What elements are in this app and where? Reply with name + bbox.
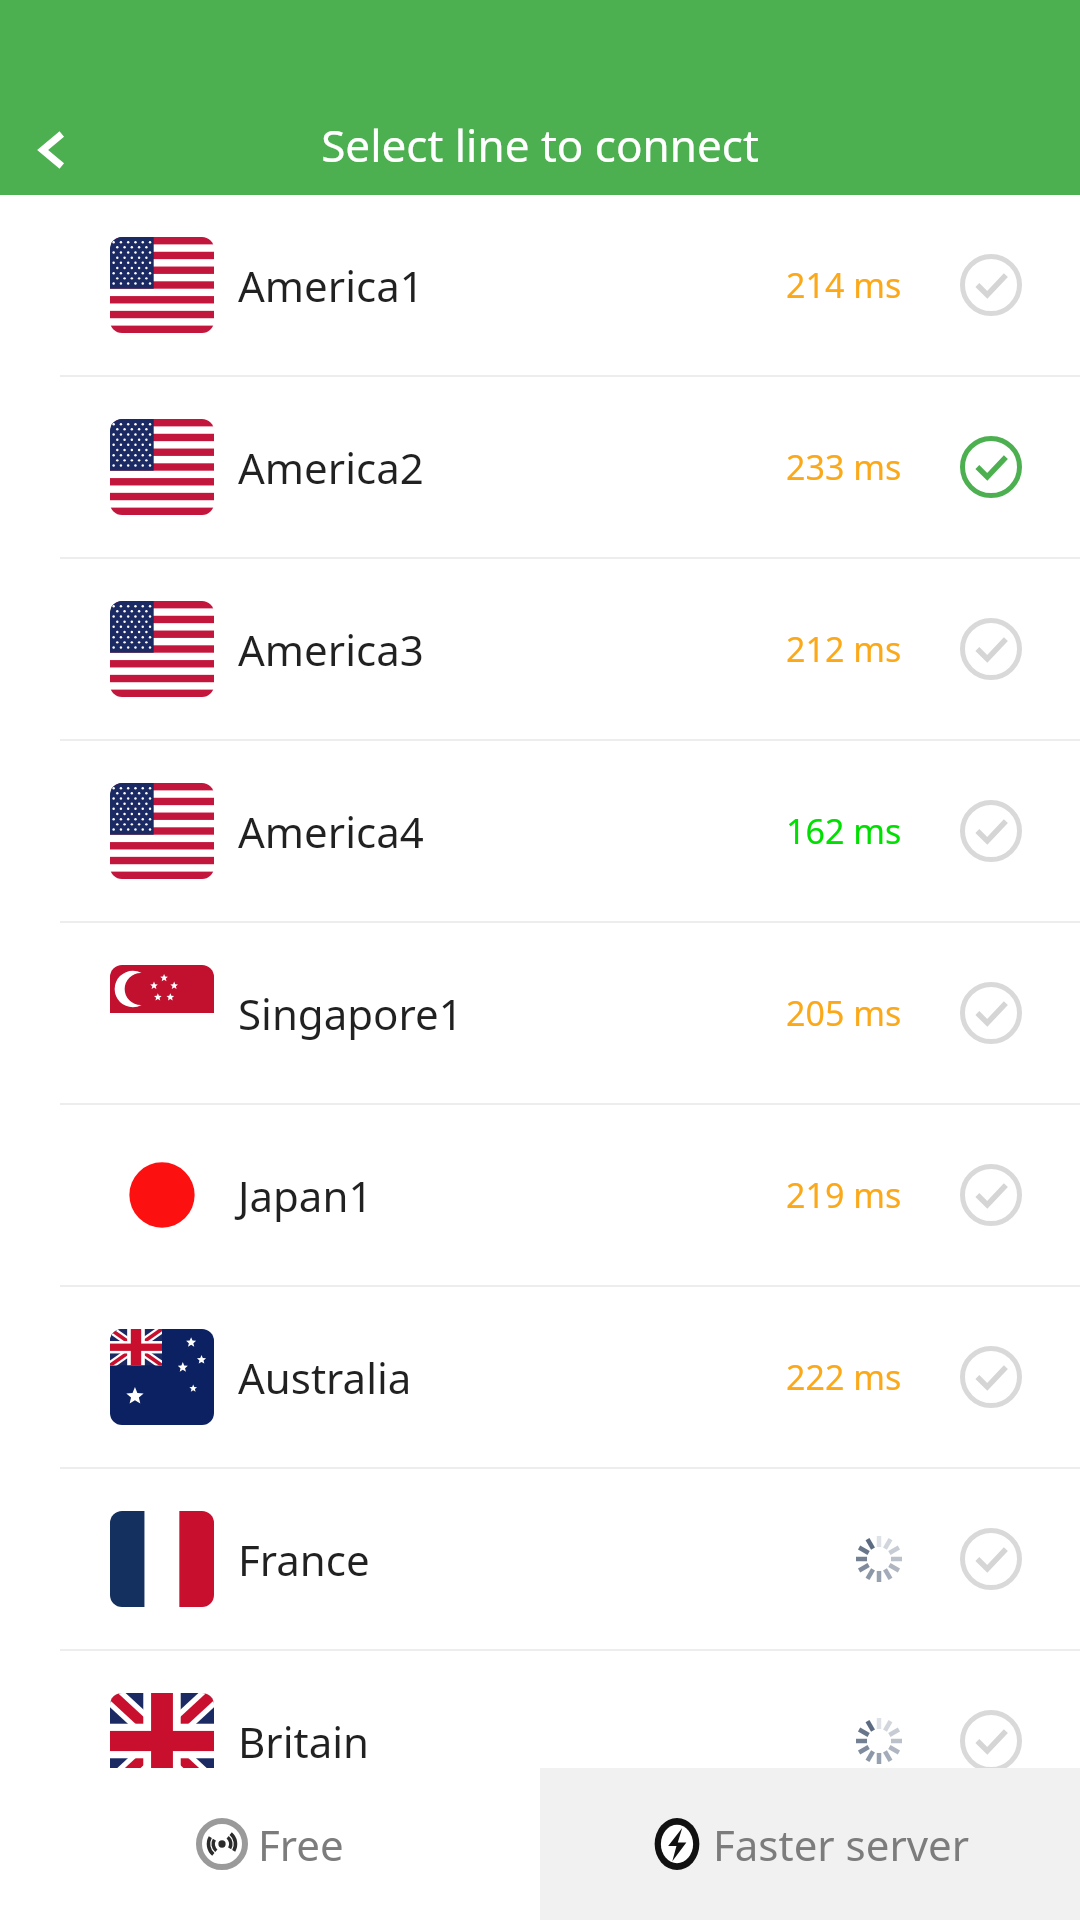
staticText: Singapore1 [238,985,463,1042]
button[interactable]: France [0,1469,1080,1649]
button[interactable]: Britain [0,1651,1080,1831]
staticText: Free [258,1816,344,1873]
staticText: Faster server [713,1816,970,1873]
button[interactable]: Back [14,111,92,189]
button[interactable]: Free [0,1768,540,1920]
staticText: America4 [238,803,424,860]
staticText: 205 ms [786,990,902,1036]
button[interactable]: Select France [946,1514,1036,1604]
staticText: Australia [238,1349,412,1406]
button[interactable]: Faster server [540,1768,1080,1920]
button[interactable]: America3 [0,559,1080,739]
button[interactable]: Japan1 [0,1105,1080,1285]
button[interactable]: Australia [0,1287,1080,1467]
button[interactable]: America1 [0,195,1080,375]
button[interactable]: Select Australia [946,1332,1036,1422]
staticText: Britain [238,1713,369,1770]
staticText: 219 ms [786,1172,902,1218]
button[interactable]: Select Britain [946,1696,1036,1786]
staticText: France [238,1531,370,1588]
button[interactable]: Select Singapore1 [946,968,1036,1058]
button[interactable]: Select Japan1 [946,1150,1036,1240]
staticText: 222 ms [786,1354,902,1400]
staticText: America3 [238,621,424,678]
button[interactable]: Select America3 [946,604,1036,694]
staticText: 162 ms [786,808,902,854]
staticText: Select line to connect [0,115,1080,175]
staticText: America2 [238,439,424,496]
button[interactable]: Select America1 [946,240,1036,330]
button[interactable]: America2 [0,377,1080,557]
button[interactable]: Singapore1 [0,923,1080,1103]
staticText: 212 ms [786,626,902,672]
button[interactable]: Select America2 [946,422,1036,512]
button[interactable]: Select America4 [946,786,1036,876]
staticText: America1 [238,257,424,314]
staticText: Japan1 [238,1167,373,1224]
staticText: 214 ms [786,262,902,308]
staticText: 233 ms [786,444,902,490]
button[interactable]: America4 [0,741,1080,921]
